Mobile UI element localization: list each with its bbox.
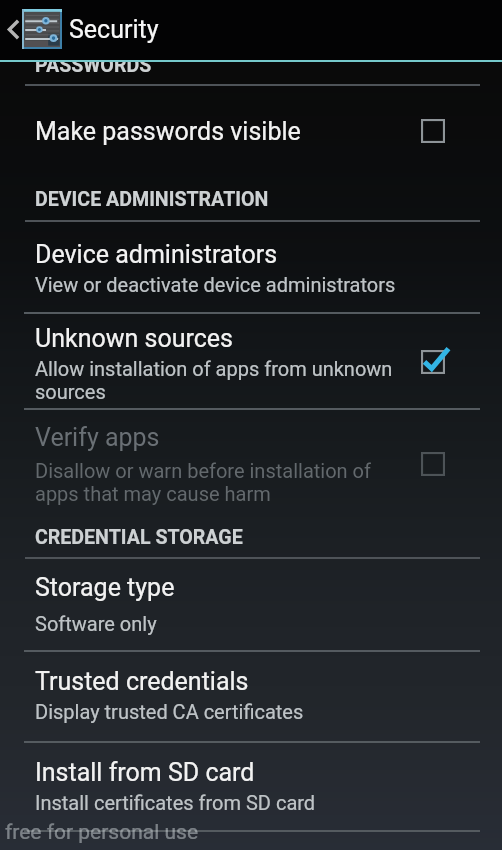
staticText: free for personal use — [5, 820, 199, 845]
staticText: Install certificates from SD card — [35, 791, 316, 814]
button[interactable] — [0, 558, 502, 649]
button[interactable] — [0, 409, 502, 519]
staticText: Software only — [35, 612, 157, 635]
button[interactable] — [0, 313, 502, 407]
staticText: Unknown sources — [35, 324, 233, 353]
staticText: Trusted credentials — [35, 667, 249, 696]
button[interactable]: Unknown sources — [407, 336, 459, 388]
staticText: Install from SD card — [35, 758, 255, 787]
button[interactable]: Make passwords visible — [407, 105, 459, 157]
staticText: Make passwords visible — [35, 117, 301, 146]
button[interactable]: Navigate up — [0, 0, 66, 60]
button[interactable]: Settings — [22, 9, 62, 49]
staticText: View or deactivate device administrators — [35, 273, 396, 296]
staticText: Display trusted CA certificates — [35, 700, 304, 723]
staticText: Disallow or warn before installation of … — [35, 459, 397, 505]
staticText: Device administrators — [35, 240, 278, 269]
staticText: CREDENTIAL STORAGE — [35, 526, 243, 549]
staticText: Allow installation of apps from unknown … — [35, 357, 407, 403]
staticText: Verify apps — [35, 423, 160, 452]
staticText: DEVICE ADMINISTRATION — [35, 188, 269, 211]
button[interactable] — [0, 222, 502, 312]
staticText: Security — [69, 15, 159, 44]
staticText: Storage type — [35, 573, 175, 602]
button[interactable] — [0, 86, 502, 171]
button[interactable]: Verify apps — [407, 438, 459, 490]
button[interactable] — [0, 651, 502, 740]
button[interactable] — [0, 742, 502, 830]
staticText: PASSWORDS — [35, 54, 152, 77]
